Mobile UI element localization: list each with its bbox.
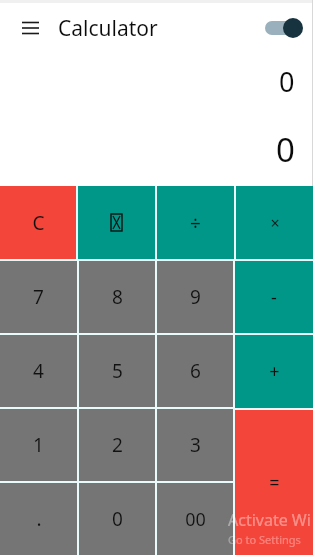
staticText: +: [269, 359, 280, 384]
button[interactable]: 3: [157, 409, 233, 481]
staticText: .: [36, 506, 42, 532]
button[interactable]: 6: [157, 335, 233, 407]
staticText: Activate Wi: [228, 509, 311, 531]
staticText: 8: [112, 284, 123, 310]
button[interactable]: Backspace: [78, 186, 155, 259]
staticText: =: [269, 470, 280, 495]
staticText: 2: [112, 432, 123, 458]
button[interactable]: C: [0, 186, 76, 259]
button[interactable]: Add: [235, 335, 313, 408]
button[interactable]: Equals: [235, 410, 313, 555]
button[interactable]: Subtract: [235, 261, 313, 333]
button[interactable]: 4: [0, 335, 77, 407]
button[interactable]: Multiply: [236, 186, 313, 259]
staticText: 4: [33, 358, 44, 384]
staticText: ÷: [190, 210, 201, 236]
button[interactable]: Toggle theme: [261, 15, 303, 41]
button[interactable]: 0: [79, 483, 155, 555]
button[interactable]: 5: [79, 335, 155, 407]
staticText: Go to Settings: [228, 532, 301, 547]
staticText: 7: [33, 284, 44, 310]
staticText: 00: [185, 507, 206, 532]
button[interactable]: 8: [79, 261, 155, 333]
staticText: ×: [270, 212, 280, 234]
button[interactable]: 00: [157, 483, 233, 555]
staticText: 3: [190, 432, 201, 458]
staticText: 0: [112, 506, 123, 532]
button[interactable]: 1: [0, 409, 77, 481]
staticText: -: [271, 285, 277, 310]
staticText: 9: [190, 284, 201, 310]
staticText: C: [32, 210, 45, 236]
button[interactable]: Divide: [157, 186, 234, 259]
button[interactable]: 9: [157, 261, 233, 333]
staticText: 6: [190, 358, 201, 384]
staticText: 0: [279, 63, 295, 100]
button[interactable]: 7: [0, 261, 77, 333]
staticText: Calculator: [58, 14, 158, 43]
staticText: 0: [276, 127, 295, 172]
button[interactable]: Open navigation menu: [12, 10, 48, 46]
button[interactable]: 2: [79, 409, 155, 481]
staticText: 1: [33, 432, 44, 458]
staticText: 5: [112, 358, 123, 384]
